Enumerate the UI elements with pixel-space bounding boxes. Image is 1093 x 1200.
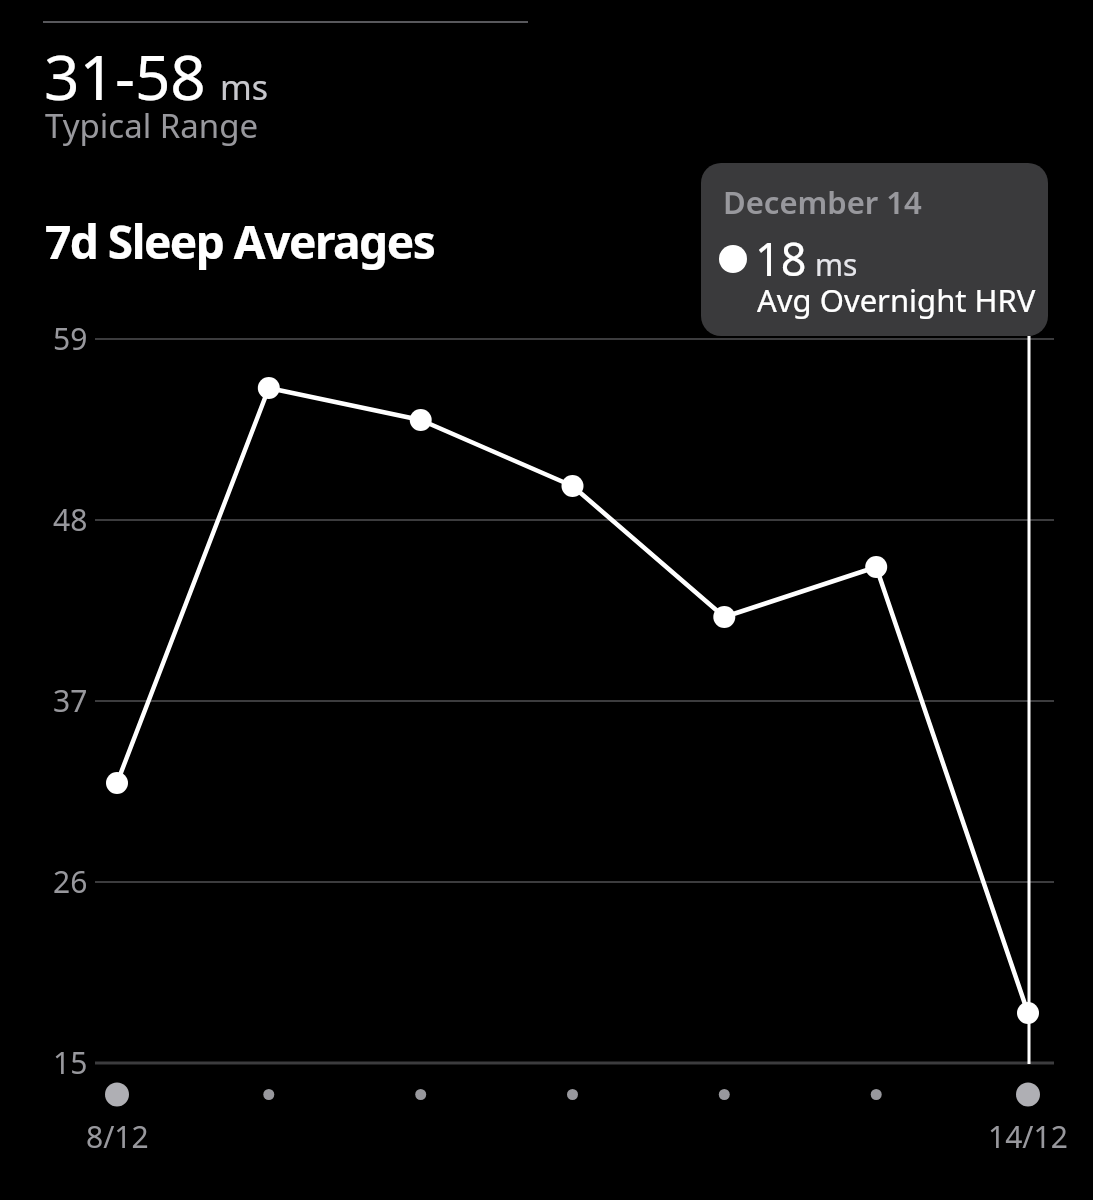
button[interactable]: December 14 [701, 163, 1048, 336]
staticText: 14/12 [988, 1116, 1068, 1157]
staticText: 18 [755, 228, 807, 289]
staticText: 31-58 [44, 34, 206, 118]
staticText: 59 [53, 318, 88, 359]
staticText: ms [220, 64, 269, 110]
staticText: 8/12 [86, 1116, 149, 1157]
staticText: 26 [53, 861, 88, 902]
staticText: December 14 [723, 181, 922, 223]
staticText: 15 [53, 1042, 88, 1083]
staticText: Avg Overnight HRV [757, 279, 1036, 321]
staticText: Typical Range [45, 103, 259, 148]
staticText: 48 [53, 499, 88, 540]
staticText: 7d Sleep Averages [45, 210, 435, 273]
staticText: ms [815, 244, 858, 285]
staticText: 37 [53, 680, 88, 721]
